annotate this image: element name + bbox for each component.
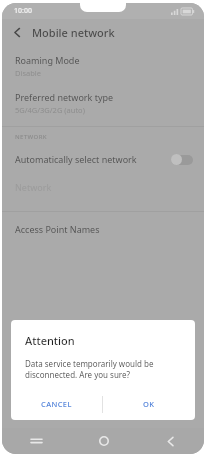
button[interactable]: Preferred network type [2,89,204,117]
button[interactable]: Recent apps [2,428,70,454]
staticText: Data service temporarily would be discon… [25,358,154,380]
staticText: Mobile network [32,25,115,40]
staticText: NETWORK [15,133,48,141]
staticText: Roaming Mode [15,54,80,66]
button[interactable]: Automatically select network toggle [171,154,193,165]
staticText: Automatically select network [15,153,137,165]
button[interactable]: Access Point Names [2,218,204,240]
staticText: Attention [25,333,75,348]
staticText: Network [15,181,52,193]
button[interactable]: CANCEL [11,391,102,417]
staticText: OK [143,399,155,409]
button[interactable]: Back [137,428,204,454]
staticText: 10:00 [14,6,32,16]
button[interactable]: Automatically select network [2,146,204,172]
staticText: CANCEL [41,399,72,409]
button[interactable]: OK [103,391,195,417]
staticText: 5G/4G/3G/2G (auto) [15,105,85,115]
staticText: Access Point Names [15,223,100,235]
staticText: Preferred network type [15,91,114,103]
button[interactable]: Roaming Mode [2,52,204,80]
button[interactable]: Back [2,19,32,46]
staticText: Disable [15,68,41,78]
button[interactable]: Home [70,428,137,454]
